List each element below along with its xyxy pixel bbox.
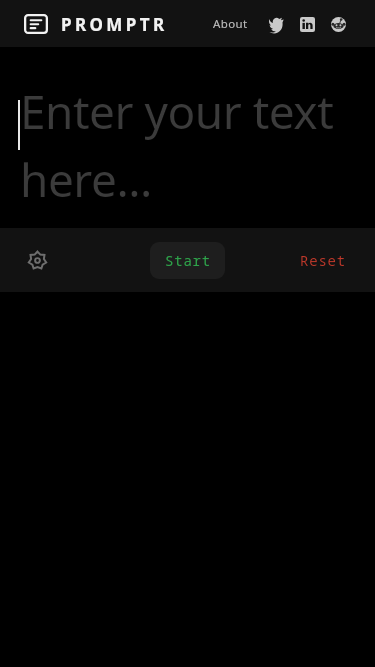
button[interactable]: Settings xyxy=(22,245,52,275)
button[interactable]: About xyxy=(209,10,252,38)
button[interactable]: Twitter xyxy=(265,13,287,35)
staticText: PROMPTR xyxy=(61,13,168,36)
button[interactable]: PROMPTR xyxy=(22,8,170,40)
staticText: Reset xyxy=(300,251,346,270)
staticText: About xyxy=(213,16,248,32)
staticText: Enter your text here... xyxy=(20,80,369,211)
button[interactable]: Reddit xyxy=(327,13,349,35)
staticText: Start xyxy=(165,251,211,270)
button[interactable]: LinkedIn xyxy=(296,13,318,35)
button[interactable]: Enter your text here... xyxy=(0,47,375,228)
button[interactable]: Start xyxy=(150,242,225,279)
button[interactable]: Reset xyxy=(295,245,351,276)
